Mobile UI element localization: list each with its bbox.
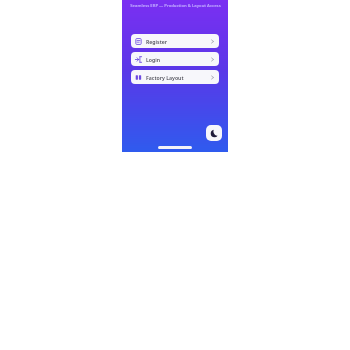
button[interactable]: Factory Layout [131,70,219,84]
button[interactable]: Login [131,52,219,66]
button[interactable]: Register [131,34,219,48]
button[interactable]: Toggle dark mode [206,125,222,141]
staticText: Register [146,38,168,45]
staticText: Login [146,56,161,63]
staticText: Factory Layout [146,74,184,81]
staticText: Seamless ERP — Production & Layout Acces… [130,3,221,9]
